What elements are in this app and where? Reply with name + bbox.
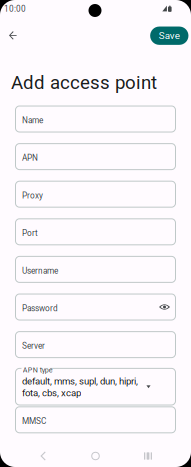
button[interactable]: Username <box>15 256 175 282</box>
staticText: fota, cbs, xcap <box>22 387 81 399</box>
staticText: Name <box>22 116 43 125</box>
staticText: MMSC <box>22 416 46 426</box>
button[interactable]: Save <box>150 27 188 45</box>
button[interactable]: Server <box>15 332 175 358</box>
button[interactable]: Recent apps <box>137 446 158 466</box>
staticText: Add access point <box>11 72 157 93</box>
button[interactable]: Back <box>34 445 52 466</box>
button[interactable]: MMSC <box>15 407 175 433</box>
button[interactable]: Home <box>86 446 105 466</box>
staticText: Server <box>22 341 45 351</box>
staticText: APN type <box>23 366 53 374</box>
staticText: Port <box>22 228 38 238</box>
staticText: APN <box>22 153 38 163</box>
button[interactable]: Proxy <box>15 181 175 207</box>
staticText: default, mms, supl, dun, hipri, <box>22 376 138 387</box>
staticText: 10:00 <box>4 4 26 14</box>
button[interactable]: APN <box>15 144 175 170</box>
staticText: Save <box>159 30 180 41</box>
button[interactable]: Back <box>2 24 24 47</box>
button[interactable]: Name <box>15 106 175 132</box>
button[interactable]: Port <box>15 219 175 245</box>
staticText: Username <box>22 266 58 276</box>
button[interactable]: Password <box>15 294 175 320</box>
button[interactable]: APN type <box>15 368 175 405</box>
staticText: Proxy <box>22 191 43 200</box>
staticText: Password <box>22 304 58 313</box>
